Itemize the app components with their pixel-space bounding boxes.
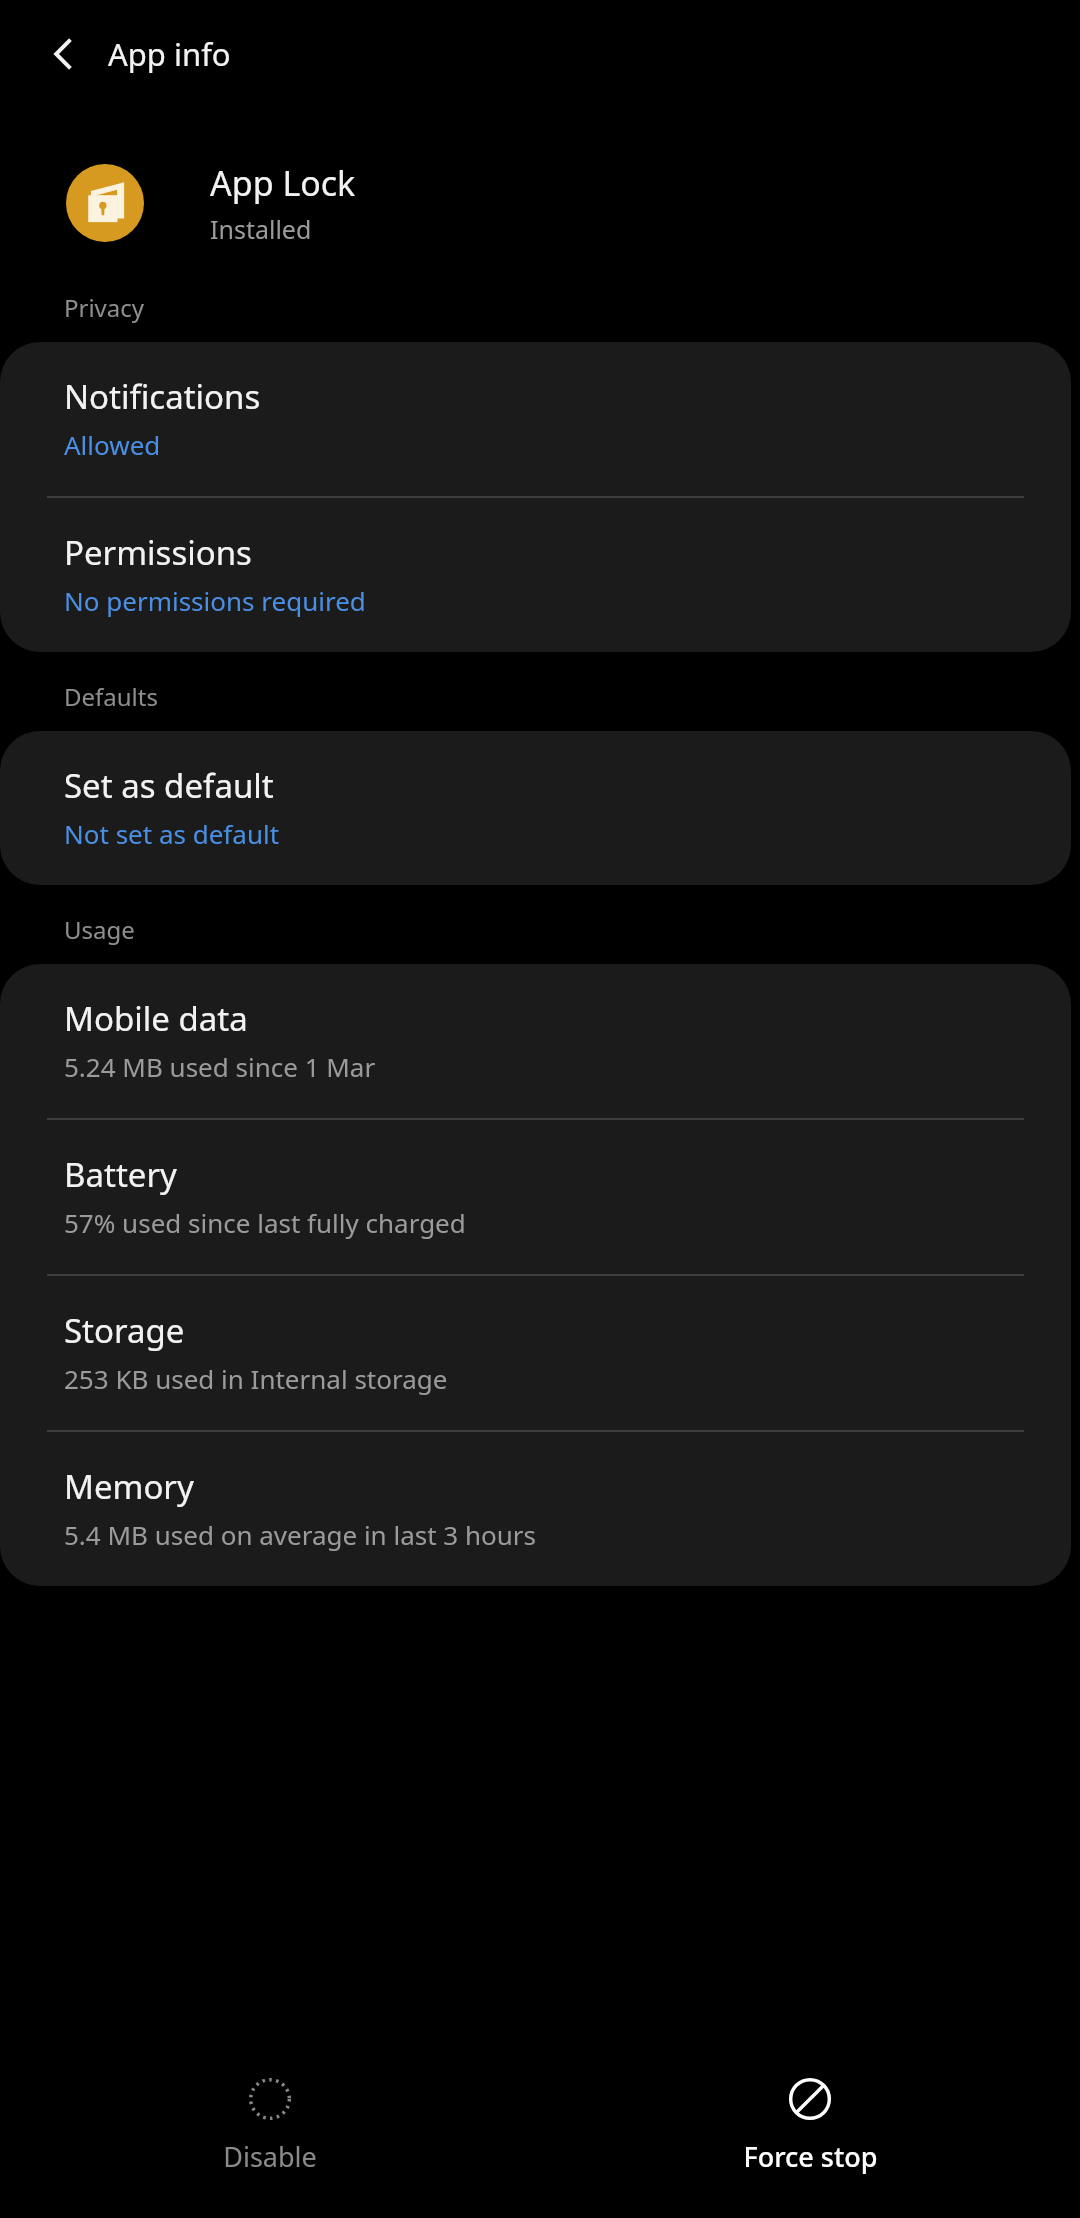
button[interactable]: Permissions (0, 498, 1071, 652)
staticText: Storage (64, 1308, 185, 1353)
staticText: Force stop (743, 2138, 878, 2175)
staticText: 5.4 MB used on average in last 3 hours (64, 1517, 537, 1552)
staticText: 253 KB used in Internal storage (64, 1361, 448, 1396)
staticText: App info (108, 33, 231, 75)
staticText: Allowed (64, 427, 161, 462)
button[interactable]: Memory (0, 1432, 1071, 1586)
button[interactable]: Disable (0, 2033, 540, 2218)
staticText: Mobile data (64, 996, 248, 1041)
staticText: Defaults (64, 680, 158, 713)
staticText: Installed (210, 212, 312, 246)
staticText: Permissions (64, 530, 252, 575)
staticText: Disable (223, 2138, 317, 2175)
staticText: Memory (64, 1464, 194, 1509)
button[interactable]: Battery (0, 1120, 1071, 1274)
button[interactable]: Back (34, 23, 96, 85)
staticText: Set as default (64, 763, 274, 808)
button[interactable]: Set as default (0, 731, 1071, 885)
button[interactable]: Force stop (540, 2033, 1080, 2218)
button[interactable]: Notifications (0, 342, 1071, 496)
staticText: 57% used since last fully charged (64, 1205, 466, 1240)
staticText: Battery (64, 1152, 177, 1197)
staticText: Usage (64, 913, 135, 946)
staticText: No permissions required (64, 583, 366, 618)
button[interactable]: Mobile data (0, 964, 1071, 1118)
staticText: App Lock (210, 160, 356, 206)
staticText: Notifications (64, 374, 261, 419)
button[interactable]: Storage (0, 1276, 1071, 1430)
staticText: Not set as default (64, 816, 280, 851)
staticText: Privacy (64, 291, 145, 324)
staticText: 5.24 MB used since 1 Mar (64, 1049, 376, 1084)
